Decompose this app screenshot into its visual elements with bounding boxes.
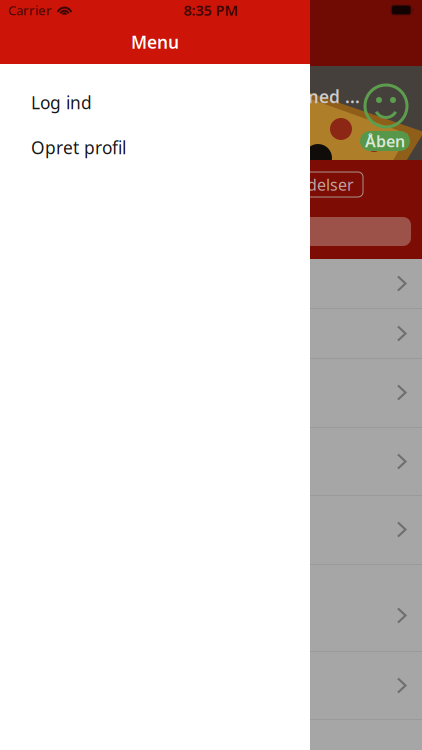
button[interactable] bbox=[0, 309, 422, 359]
button[interactable] bbox=[0, 428, 422, 496]
button[interactable]: Log ind bbox=[0, 80, 310, 125]
button[interactable] bbox=[0, 259, 422, 309]
button[interactable] bbox=[0, 359, 422, 428]
staticText: 8:35 PM bbox=[183, 0, 238, 20]
button[interactable]: Tomat, ost, oksekød, skinke, jalapenos, bbox=[0, 565, 422, 652]
button[interactable]: Tomat, ost, mozzarella, pizzadressing bbox=[0, 496, 422, 565]
staticText: Log ind bbox=[31, 91, 92, 114]
staticText: Pizza Hytten - Alt er hjemmelavet med ..… bbox=[14, 85, 360, 108]
staticText: Åben bbox=[365, 130, 405, 152]
staticText: Carrier bbox=[8, 1, 52, 19]
staticText: Opret profil bbox=[31, 136, 126, 159]
staticText: Menu bbox=[131, 30, 179, 53]
button[interactable]: Se anmeldelser bbox=[229, 172, 363, 197]
button[interactable]: Opret profil bbox=[0, 125, 310, 170]
button[interactable] bbox=[0, 652, 422, 720]
staticText: Se anmeldelser bbox=[238, 174, 354, 195]
